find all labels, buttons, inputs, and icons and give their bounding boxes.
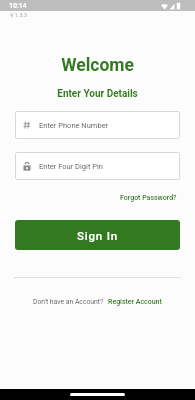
staticText: Enter Four Digit Pin (39, 162, 103, 171)
staticText: Enter Your Details (0, 88, 195, 100)
other: Pin (23, 162, 31, 171)
button[interactable]: Forgot Password? (118, 192, 179, 204)
button[interactable]: Sign In (15, 220, 180, 250)
staticText: 10:14 (9, 2, 27, 10)
other: Phone number (23, 121, 31, 129)
button[interactable]: Phone number (15, 111, 180, 139)
staticText: Register Account (108, 298, 162, 306)
staticText: Forgot Password? (120, 194, 177, 202)
staticText: Sign In (77, 229, 118, 242)
button[interactable]: Register Account (108, 298, 162, 306)
staticText: Don't have an Account? (33, 298, 104, 306)
staticText: Welcome (0, 55, 195, 76)
staticText: Enter Phone Number (39, 121, 109, 130)
button[interactable]: Pin (15, 152, 180, 180)
staticText: V 1.3.3 (10, 12, 28, 18)
